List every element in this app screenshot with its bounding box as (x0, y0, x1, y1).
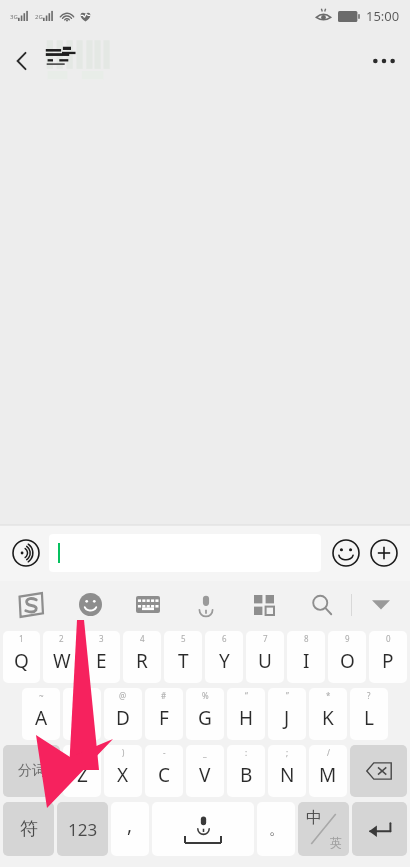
staticText: ” (286, 690, 289, 701)
button[interactable]: ! (63, 688, 101, 740)
button[interactable]: Search (293, 581, 351, 628)
staticText: O (340, 648, 355, 674)
staticText: 2G (35, 13, 43, 21)
button[interactable] (49, 534, 321, 572)
staticText: / (327, 747, 330, 758)
button[interactable]: 1 (3, 631, 40, 683)
staticText: “ (245, 690, 248, 701)
button[interactable]: Hide keyboard (352, 581, 410, 628)
button[interactable]: 123 (57, 802, 108, 856)
staticText: Q (14, 648, 29, 674)
staticText: D (116, 705, 130, 731)
button[interactable]: 0 (369, 631, 407, 683)
staticText: B (240, 762, 253, 788)
staticText: % (202, 690, 209, 701)
button[interactable]: 7 (246, 631, 284, 683)
button[interactable]: More options (358, 35, 410, 87)
staticText: 6 (222, 633, 227, 644)
button[interactable]: Emoji panel (62, 581, 119, 628)
button[interactable]: @ (104, 688, 142, 740)
staticText: ; (286, 747, 289, 758)
staticText: 3 (99, 633, 104, 644)
button[interactable]: 4 (123, 631, 161, 683)
button[interactable]: ~ (22, 688, 60, 740)
button[interactable]: Back (0, 39, 44, 83)
button[interactable]: 5 (164, 631, 202, 683)
button[interactable]: Emoji (327, 534, 365, 572)
staticText: 7 (263, 633, 268, 644)
button[interactable]: ” (268, 688, 306, 740)
button[interactable]: 8 (287, 631, 325, 683)
staticText: 1 (19, 633, 24, 644)
staticText: L (364, 705, 374, 731)
button[interactable]: 6 (205, 631, 243, 683)
button[interactable]: 符 (3, 802, 54, 856)
staticText: P (382, 648, 394, 674)
staticText: J (284, 705, 290, 731)
staticText: M (319, 762, 337, 788)
staticText: * (326, 690, 331, 701)
staticText: 123 (68, 818, 98, 841)
staticText: 9 (345, 633, 350, 644)
staticText: T (178, 648, 189, 674)
button[interactable]: _ (186, 745, 224, 797)
staticText: 中 (306, 808, 322, 828)
button[interactable]: More (365, 534, 403, 572)
staticText: 。 (269, 820, 284, 839)
staticText: - (163, 747, 166, 758)
button[interactable]: 分词 (3, 745, 60, 797)
staticText: G (198, 705, 212, 731)
staticText: 4 (140, 633, 145, 644)
button[interactable]: Sogou menu (0, 581, 62, 628)
button[interactable]: Keyboard layout (119, 581, 177, 628)
button[interactable]: 。 (257, 802, 295, 856)
button[interactable]: Enter (352, 802, 407, 856)
staticText: Z (77, 762, 88, 788)
staticText: ~ (39, 690, 44, 701)
button[interactable]: Voice input (7, 534, 45, 572)
button[interactable]: ? (350, 688, 388, 740)
button[interactable]: 2 (43, 631, 80, 683)
button[interactable]: Apps (235, 581, 293, 628)
button[interactable]: Voice (177, 581, 235, 628)
button[interactable]: 3 (83, 631, 120, 683)
staticText: 英 (330, 835, 342, 850)
staticText: C (158, 762, 171, 788)
staticText: 分词 (18, 762, 46, 780)
staticText: V (199, 762, 211, 788)
staticText: 2 (59, 633, 64, 644)
button[interactable]: / (309, 745, 347, 797)
button[interactable]: Space (152, 802, 254, 856)
button[interactable]: ( (63, 745, 101, 797)
button[interactable]: 9 (328, 631, 366, 683)
staticText: X (117, 762, 129, 788)
staticText: @ (119, 690, 127, 701)
staticText: # (161, 690, 167, 701)
button[interactable]: - (145, 745, 183, 797)
staticText: A (35, 705, 48, 731)
button[interactable]: % (186, 688, 224, 740)
button[interactable]: Backspace (350, 745, 407, 797)
button[interactable]: ; (268, 745, 306, 797)
staticText: W (53, 648, 71, 674)
staticText: ) (122, 747, 125, 758)
staticText: Y (219, 648, 230, 674)
staticText: 8 (304, 633, 309, 644)
staticText: , (127, 812, 133, 838)
button[interactable]: : (227, 745, 265, 797)
button[interactable]: * (309, 688, 347, 740)
staticText: I (303, 648, 310, 674)
button[interactable]: “ (227, 688, 265, 740)
button[interactable]: # (145, 688, 183, 740)
staticText: U (258, 648, 272, 674)
staticText: 符 (20, 818, 38, 841)
button[interactable]: Switch Chinese English (298, 802, 349, 856)
button[interactable]: , (111, 802, 149, 856)
staticText: ? (367, 690, 371, 701)
staticText: 3G (10, 13, 18, 21)
staticText: 5 (181, 633, 186, 644)
button[interactable]: ) (104, 745, 142, 797)
